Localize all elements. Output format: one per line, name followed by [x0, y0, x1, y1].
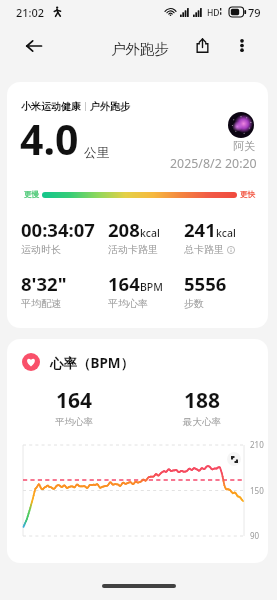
staticText: 心率（BPM）: [50, 354, 135, 372]
staticText: 4.0: [20, 111, 79, 167]
staticText: 79: [248, 5, 261, 20]
staticText: 208: [108, 217, 140, 242]
staticText: BPM: [140, 280, 163, 294]
staticText: 164: [108, 271, 140, 296]
staticText: kcal: [140, 226, 160, 240]
staticText: 8'32": [21, 271, 67, 296]
staticText: HD: [207, 7, 220, 19]
staticText: 150: [250, 485, 264, 496]
staticText: 5556: [184, 271, 227, 296]
staticText: 更快: [240, 190, 255, 199]
staticText: 总卡路里: [184, 243, 224, 256]
staticText: 00:34:07: [21, 217, 95, 242]
staticText: 公里: [84, 145, 109, 161]
staticText: 241: [184, 217, 216, 242]
staticText: 2025/8/2 20:20: [170, 155, 257, 172]
staticText: 小米运动健康: [21, 100, 81, 113]
staticText: kcal: [216, 226, 236, 240]
button[interactable]: Fullscreen: [227, 452, 241, 466]
staticText: 阿关: [233, 139, 255, 153]
staticText: 户外跑步: [90, 100, 130, 113]
button[interactable]: More options: [228, 31, 256, 59]
staticText: 90: [250, 530, 260, 541]
staticText: 平均心率: [55, 416, 93, 428]
staticText: 户外跑步: [111, 40, 169, 58]
staticText: 188: [184, 386, 221, 415]
staticText: 平均配速: [21, 297, 61, 310]
staticText: 164: [56, 386, 93, 415]
staticText: 210: [250, 439, 264, 450]
staticText: 活动卡路里: [108, 243, 158, 256]
staticText: 平均心率: [108, 297, 148, 310]
button[interactable]: Share: [188, 31, 217, 60]
button[interactable]: Back: [19, 31, 49, 61]
staticText: 步数: [184, 297, 204, 310]
staticText: 21:02: [16, 5, 45, 20]
staticText: 运动时长: [21, 243, 61, 256]
staticText: 更慢: [24, 190, 39, 199]
staticText: 最大心率: [183, 416, 221, 428]
